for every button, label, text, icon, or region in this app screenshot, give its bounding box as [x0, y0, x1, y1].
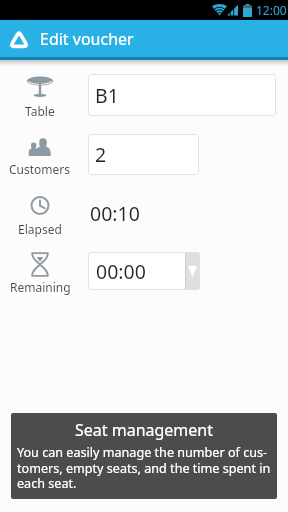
staticText: 00:10 — [90, 200, 140, 227]
button[interactable]: 00:00 — [88, 252, 200, 290]
staticText: 12:00 — [256, 2, 287, 18]
staticText: Table — [25, 103, 55, 119]
staticText: You can easily manage the number of cus-… — [17, 444, 271, 491]
staticText: 2 — [95, 141, 107, 168]
button[interactable]: 2 — [88, 134, 199, 175]
staticText: Customers — [9, 161, 71, 177]
staticText: Edit voucher — [40, 28, 134, 50]
staticText: Seat management — [11, 419, 277, 441]
staticText: Elapsed — [18, 221, 62, 237]
button[interactable]: B1 — [88, 74, 276, 116]
button[interactable]: Up — [0, 20, 288, 57]
staticText: B1 — [95, 82, 119, 109]
button[interactable]: Up — [0, 20, 37, 57]
staticText: Remaining — [10, 279, 71, 295]
staticText: 00:00 — [96, 258, 146, 285]
